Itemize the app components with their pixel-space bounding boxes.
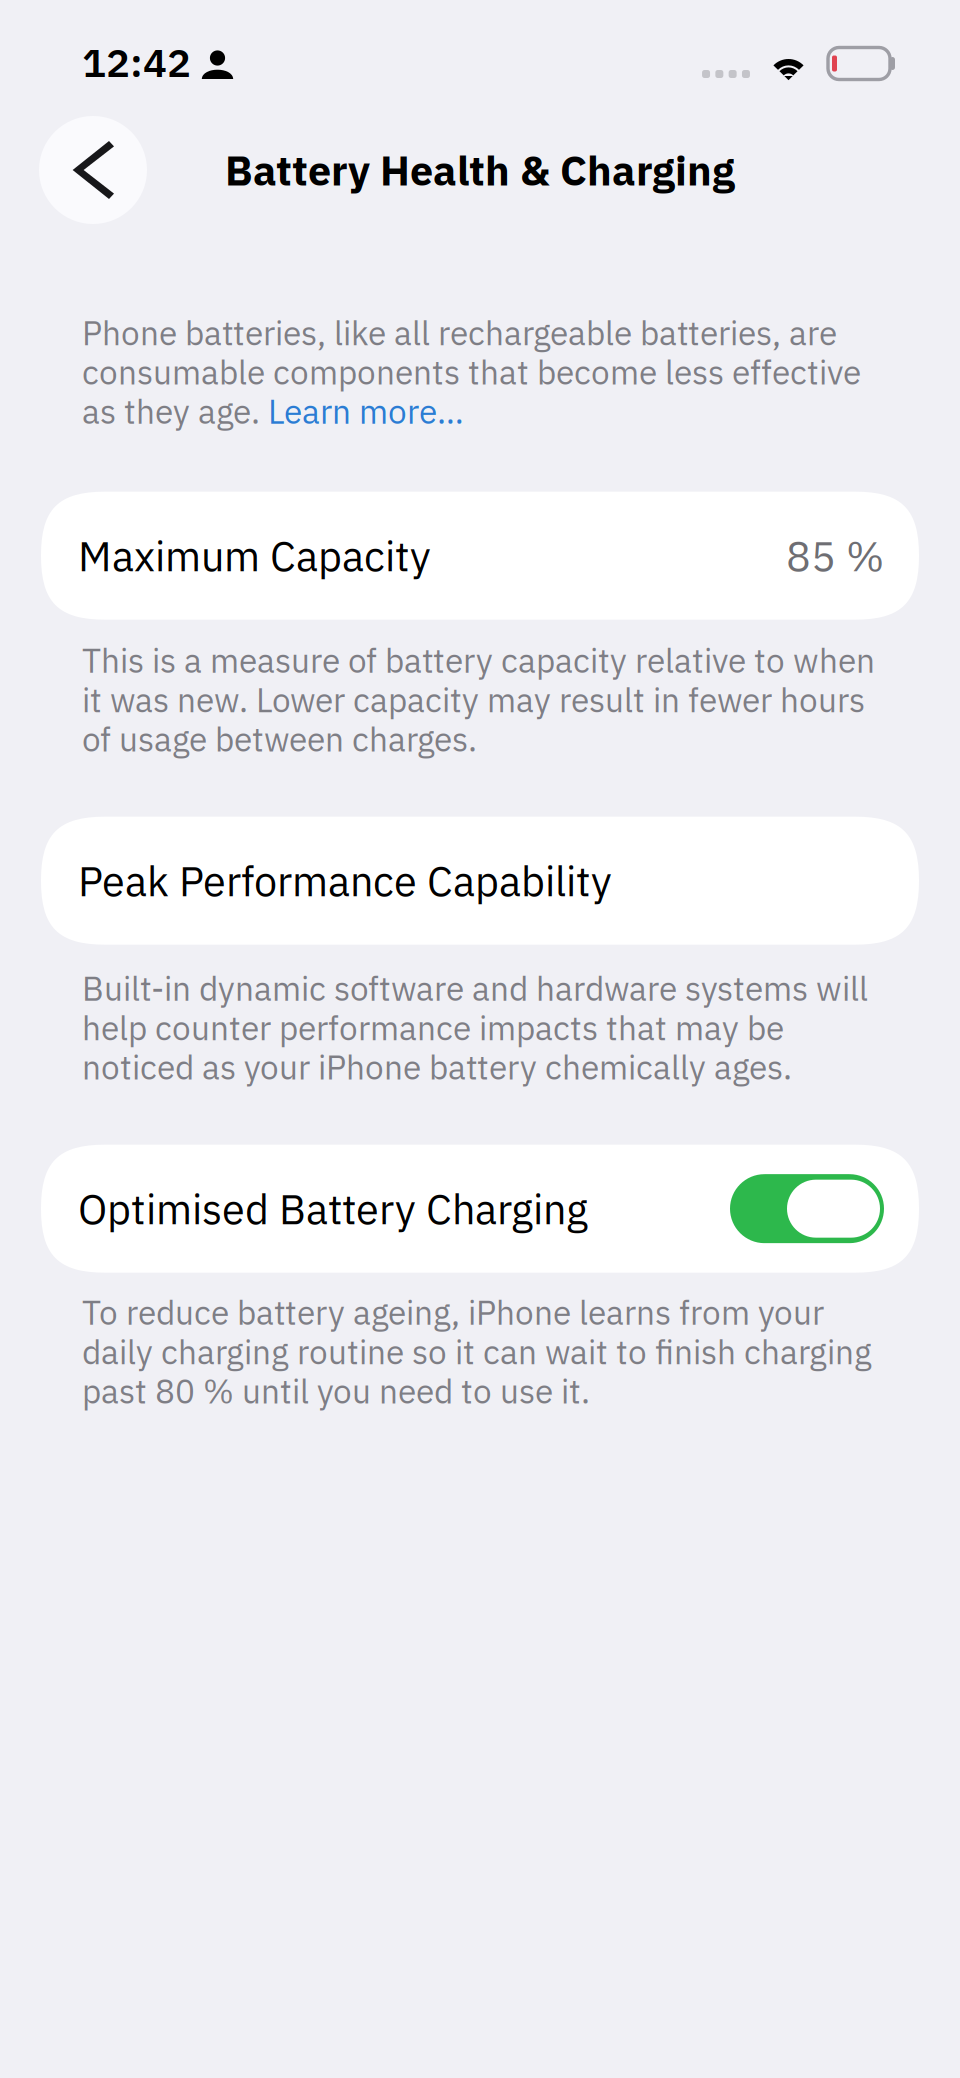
- staticText: Learn more…: [268, 389, 464, 433]
- button[interactable]: Peak Performance Capability: [41, 817, 919, 945]
- staticText: Battery Health & Charging: [225, 143, 735, 197]
- staticText: Maximum Capacity: [78, 529, 431, 582]
- staticText: as they age.: [82, 389, 268, 433]
- button[interactable]: Back: [39, 116, 147, 224]
- button[interactable]: Optimised Battery Charging: [41, 1145, 919, 1273]
- staticText: Peak Performance Capability: [78, 854, 612, 907]
- button[interactable]: Learn more…: [268, 389, 464, 433]
- staticText: Optimised Battery Charging: [78, 1182, 588, 1235]
- staticText: Built-in dynamic software and hardware s…: [82, 967, 868, 1089]
- staticText: Phone batteries, like all rechargeable b…: [82, 311, 861, 394]
- staticText: To reduce battery ageing, iPhone learns …: [82, 1291, 872, 1413]
- staticText: This is a measure of battery capacity re…: [82, 639, 875, 761]
- staticText: 85 %: [786, 529, 884, 582]
- button[interactable]: Maximum Capacity: [41, 492, 919, 620]
- staticText: 12:42: [82, 36, 191, 88]
